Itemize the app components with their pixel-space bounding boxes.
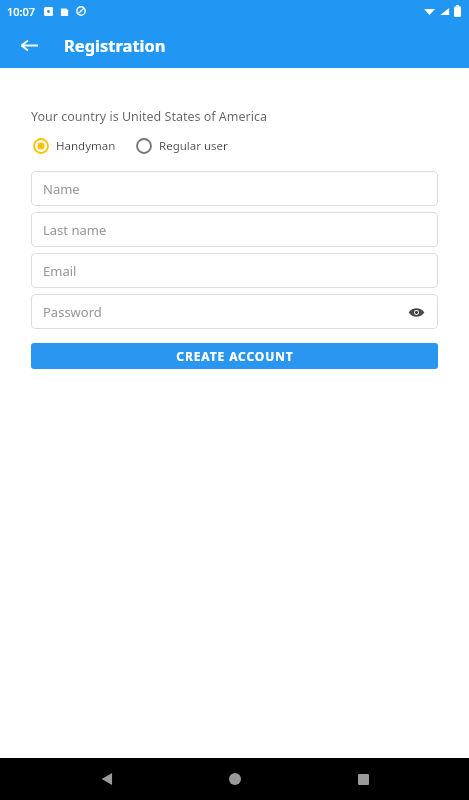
button[interactable]: Regular user [134,136,230,156]
staticText: Name [43,180,80,198]
staticText: Registration [64,34,166,56]
button[interactable]: Email [31,253,438,288]
staticText: Handyman [56,138,116,154]
staticText: Last name [43,221,107,239]
staticText: CREATE ACCOUNT [176,348,294,364]
staticText: 10:07 [7,4,36,19]
staticText: Regular user [159,138,228,154]
button[interactable]: Show password [402,298,430,326]
button[interactable]: Back [85,758,129,800]
button[interactable]: Password [31,294,438,329]
button[interactable]: Handyman [31,136,118,156]
button[interactable]: Home [213,758,257,800]
button[interactable]: Name [31,171,438,206]
staticText: Your country is United States of America [31,108,267,125]
staticText: Email [43,262,77,280]
staticText: Password [43,303,102,321]
button[interactable]: Last name [31,212,438,247]
button[interactable]: Recent apps [341,758,385,800]
button[interactable]: Back [12,28,46,62]
button[interactable]: CREATE ACCOUNT [31,343,438,369]
